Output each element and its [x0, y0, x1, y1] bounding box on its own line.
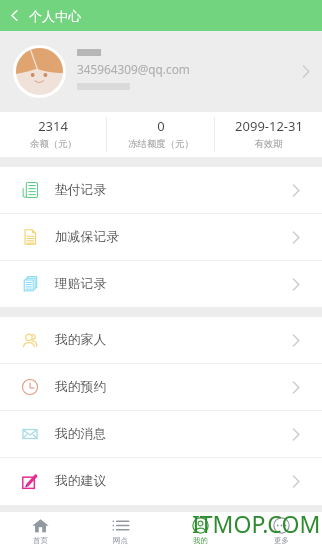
- button[interactable]: 我的消息: [0, 411, 322, 457]
- staticText: 更多: [274, 536, 289, 545]
- button[interactable]: 345964309@qq.com: [0, 31, 322, 112]
- button[interactable]: 2314: [0, 111, 106, 156]
- staticText: 余额（元）: [30, 138, 77, 150]
- button[interactable]: 我的建议: [0, 458, 322, 504]
- staticText: 我的家人: [55, 332, 107, 348]
- button[interactable]: 我的预约: [0, 364, 322, 410]
- button[interactable]: 垫付记录: [0, 167, 322, 213]
- staticText: 网点: [113, 536, 128, 545]
- button[interactable]: 网点: [80, 512, 160, 550]
- staticText: 首页: [33, 536, 48, 545]
- staticText: 我的预约: [55, 379, 107, 395]
- staticText: 2099-12-31: [235, 117, 303, 135]
- button[interactable]: 我的: [160, 512, 241, 550]
- staticText: 加减保记录: [55, 229, 119, 245]
- button[interactable]: 首页: [0, 512, 80, 550]
- staticText: 我的建议: [55, 473, 107, 489]
- staticText: 我的: [193, 536, 208, 545]
- staticText: 有效期: [254, 138, 283, 150]
- button[interactable]: 加减保记录: [0, 214, 322, 260]
- button[interactable]: 0: [107, 111, 214, 156]
- button[interactable]: 2099-12-31: [215, 111, 322, 156]
- staticText: 2314: [38, 117, 68, 135]
- staticText: 345964309@qq.com: [77, 61, 190, 77]
- staticText: 垫付记录: [55, 182, 107, 198]
- staticText: 我的消息: [55, 426, 107, 442]
- button[interactable]: Back: [0, 0, 28, 31]
- staticText: ITMOP.COM: [192, 508, 321, 539]
- staticText: 冻结额度（元）: [128, 138, 194, 150]
- staticText: 0: [157, 117, 165, 135]
- staticText: 个人中心: [29, 8, 81, 24]
- button[interactable]: 我的家人: [0, 317, 322, 363]
- button[interactable]: 理赔记录: [0, 261, 322, 307]
- staticText: 理赔记录: [55, 276, 107, 292]
- button[interactable]: 更多: [241, 512, 322, 550]
